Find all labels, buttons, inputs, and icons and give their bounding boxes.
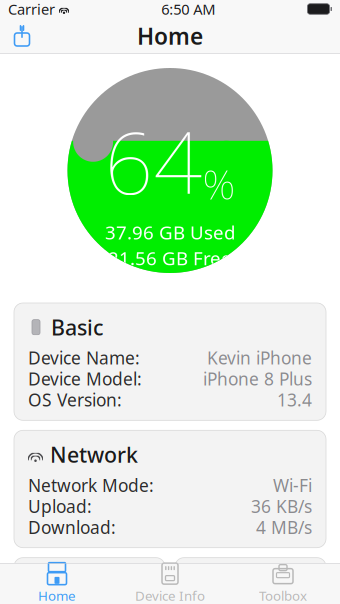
staticText: Device Info xyxy=(135,587,205,604)
staticText: 13.4 xyxy=(277,388,312,411)
staticText: Network Mode: xyxy=(28,474,154,497)
button[interactable]: Home xyxy=(0,563,113,604)
staticText: Home xyxy=(137,21,203,51)
staticText: Upload: xyxy=(28,495,92,518)
staticText: 21.56 GB Free xyxy=(108,246,232,270)
staticText: Device Model: xyxy=(28,367,142,390)
button[interactable]: Share xyxy=(0,18,44,54)
staticText: 4 MB/s xyxy=(256,516,312,539)
staticText: Download: xyxy=(28,516,116,539)
staticText: Carrier xyxy=(8,0,55,19)
staticText: Toolbox xyxy=(259,587,307,604)
staticText: Home xyxy=(38,587,76,604)
staticText: Device Name: xyxy=(28,346,140,369)
staticText: Memory xyxy=(212,567,297,595)
button[interactable]: Toolbox xyxy=(226,563,339,604)
staticText: iPhone 8 Plus xyxy=(203,367,312,390)
button[interactable]: Device Info xyxy=(113,563,226,604)
staticText: 6:50 AM xyxy=(161,0,215,19)
staticText: Wi-Fi xyxy=(273,474,312,497)
staticText: OS Version: xyxy=(28,388,122,411)
staticText: Kevin iPhone xyxy=(207,346,312,369)
staticText: 37.96 GB Used xyxy=(105,220,235,245)
staticText: CPU xyxy=(52,567,95,595)
staticText: Basic xyxy=(51,313,103,341)
staticText: 36 KB/s xyxy=(251,495,312,518)
staticText: Network xyxy=(50,440,138,469)
staticText: 64 xyxy=(104,105,202,218)
staticText: % xyxy=(202,156,235,211)
